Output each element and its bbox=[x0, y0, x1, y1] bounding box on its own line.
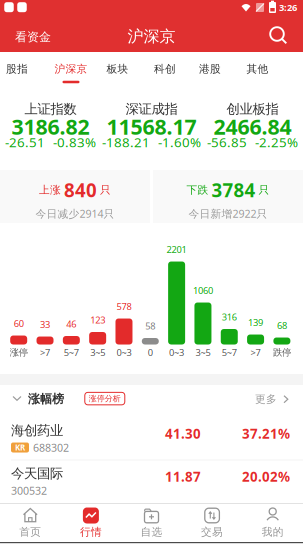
staticText: 3~5 bbox=[195, 346, 210, 359]
staticText: 下跌 bbox=[186, 183, 208, 196]
button[interactable]: 港股 bbox=[188, 55, 232, 83]
staticText: -56.85 bbox=[207, 133, 247, 151]
staticText: 300532 bbox=[11, 483, 47, 498]
button[interactable]: 其他 bbox=[235, 55, 279, 83]
staticText: 首页 bbox=[19, 525, 41, 538]
staticText: 涨停 bbox=[10, 347, 28, 358]
staticText: 更多 bbox=[255, 393, 277, 406]
staticText: -1.60% bbox=[158, 133, 201, 151]
staticText: 20.02% bbox=[242, 468, 290, 485]
staticText: 涨停分析 bbox=[89, 394, 121, 403]
staticText: 我的 bbox=[262, 525, 284, 538]
button[interactable]: 自选 bbox=[122, 504, 180, 543]
staticText: 行情 bbox=[80, 525, 102, 538]
staticText: 深证成指 bbox=[125, 101, 177, 117]
staticText: 0~3 bbox=[169, 346, 184, 359]
staticText: 涨幅榜 bbox=[28, 392, 64, 406]
button[interactable]: 下跌 bbox=[153, 170, 303, 223]
button[interactable]: 科创 bbox=[143, 55, 187, 83]
staticText: 2466.84 bbox=[213, 112, 291, 141]
button[interactable]: 上证指数 bbox=[0, 84, 101, 170]
button[interactable]: 海创药业 bbox=[0, 417, 303, 460]
staticText: 58 bbox=[145, 320, 155, 332]
button[interactable]: 深证成指 bbox=[101, 84, 202, 170]
staticText: 3~5 bbox=[90, 346, 105, 359]
staticText: 今日新增2922只 bbox=[188, 206, 267, 221]
button[interactable]: 交易 bbox=[183, 504, 241, 543]
staticText: 2201 bbox=[167, 243, 187, 256]
staticText: 11.87 bbox=[165, 468, 201, 485]
button[interactable]: 首页 bbox=[1, 504, 59, 543]
staticText: 41.30 bbox=[165, 425, 201, 442]
staticText: 科创 bbox=[154, 62, 176, 75]
staticText: 沪深京 bbox=[54, 62, 87, 75]
staticText: 创业板指 bbox=[226, 101, 278, 117]
staticText: 股指 bbox=[6, 62, 28, 75]
button[interactable]: Search bbox=[263, 22, 293, 48]
staticText: 3186.82 bbox=[11, 112, 89, 141]
button[interactable]: 行情 bbox=[62, 504, 120, 543]
staticText: 0~3 bbox=[116, 346, 131, 359]
staticText: 今天国际 bbox=[11, 465, 63, 482]
staticText: 578 bbox=[116, 300, 131, 313]
staticText: 139 bbox=[248, 316, 263, 329]
staticText: 3784 bbox=[211, 178, 255, 202]
staticText: 68 bbox=[277, 319, 287, 332]
staticText: 33 bbox=[40, 318, 50, 331]
button[interactable]: 看资金 bbox=[8, 27, 58, 47]
staticText: 688302 bbox=[33, 440, 69, 455]
staticText: 板块 bbox=[106, 62, 128, 75]
staticText: 沪深京 bbox=[127, 27, 175, 46]
staticText: 5~7 bbox=[222, 346, 237, 359]
button[interactable]: 涨停分析 bbox=[85, 392, 125, 405]
staticText: 只 bbox=[100, 183, 111, 196]
staticText: 1060 bbox=[193, 284, 213, 297]
staticText: 840 bbox=[64, 178, 97, 202]
staticText: -0.83% bbox=[53, 133, 96, 151]
staticText: 上涨 bbox=[39, 183, 61, 196]
staticText: 5~7 bbox=[64, 346, 79, 359]
button[interactable]: Collapse bbox=[7, 388, 27, 408]
button[interactable]: 沪深京 bbox=[49, 55, 93, 83]
staticText: 看资金 bbox=[15, 30, 51, 44]
button[interactable]: 板块 bbox=[95, 55, 139, 83]
staticText: 交易 bbox=[201, 525, 223, 538]
staticText: 11568.17 bbox=[106, 112, 196, 141]
staticText: 港股 bbox=[199, 62, 221, 75]
staticText: 只 bbox=[258, 183, 269, 196]
staticText: 今日减少2914只 bbox=[35, 206, 114, 221]
staticText: 海创药业 bbox=[11, 422, 63, 439]
staticText: 3:26 bbox=[279, 1, 297, 14]
button[interactable]: 我的 bbox=[244, 504, 302, 543]
staticText: -188.21 bbox=[102, 133, 150, 151]
button[interactable]: 上涨 bbox=[0, 170, 150, 223]
staticText: -2.25% bbox=[255, 133, 298, 151]
button[interactable]: 创业板指 bbox=[202, 84, 303, 170]
staticText: KR bbox=[15, 442, 25, 453]
staticText: 跌停 bbox=[273, 347, 291, 358]
staticText: 123 bbox=[90, 314, 105, 326]
staticText: 60 bbox=[14, 317, 24, 330]
staticText: 316 bbox=[222, 311, 237, 323]
staticText: >7 bbox=[40, 346, 50, 359]
button[interactable]: 更多 bbox=[255, 387, 289, 411]
staticText: 自选 bbox=[140, 525, 162, 538]
staticText: 46 bbox=[66, 318, 76, 330]
staticText: 其他 bbox=[246, 62, 268, 75]
staticText: -26.51 bbox=[5, 133, 45, 151]
staticText: 0 bbox=[148, 346, 153, 359]
button[interactable]: 股指 bbox=[0, 55, 39, 83]
staticText: 上证指数 bbox=[24, 101, 76, 117]
button[interactable]: 今天国际 bbox=[0, 460, 303, 503]
staticText: >7 bbox=[251, 346, 261, 359]
staticText: 37.21% bbox=[242, 425, 290, 442]
